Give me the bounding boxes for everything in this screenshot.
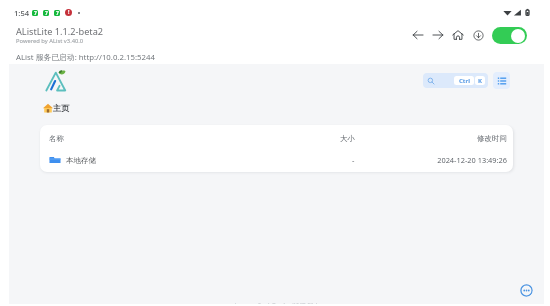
button[interactable]: 主页	[43, 103, 70, 113]
staticText: 修改时间	[417, 134, 507, 143]
staticText: 7	[34, 10, 37, 16]
button[interactable]: List view	[493, 72, 510, 89]
staticText: 7	[45, 10, 48, 16]
staticText: -	[352, 155, 355, 165]
staticText: 名称	[49, 134, 64, 143]
button[interactable]: Forward	[428, 25, 448, 45]
staticText: 大小	[340, 134, 355, 143]
button[interactable]: Home	[448, 25, 468, 45]
button[interactable]: 本地存储	[40, 150, 513, 169]
staticText: 1:54	[14, 8, 30, 18]
staticText: AListLite 1.1.2-beta2	[16, 25, 104, 38]
staticText: Ctrl	[459, 77, 470, 85]
button[interactable]: Download	[468, 25, 488, 45]
staticText: Powered by AList v3.40.0	[16, 37, 84, 45]
button[interactable]: Back	[408, 25, 428, 45]
staticText: AList 服务已启动: http://10.0.2.15:5244	[16, 52, 155, 63]
button[interactable]: More options	[519, 283, 533, 297]
staticText: !	[68, 9, 70, 16]
staticText: 7	[56, 10, 59, 16]
staticText: 主页	[53, 103, 70, 113]
staticText: 本地存储	[66, 156, 96, 165]
staticText: 2024-12-20 13:49:26	[417, 155, 507, 165]
button[interactable]: Toggle AList service	[492, 27, 527, 44]
staticText: 由 AList 强力驱动 - 版权所有	[232, 302, 321, 304]
button[interactable]: Search	[423, 73, 488, 88]
staticText: K	[478, 77, 482, 85]
